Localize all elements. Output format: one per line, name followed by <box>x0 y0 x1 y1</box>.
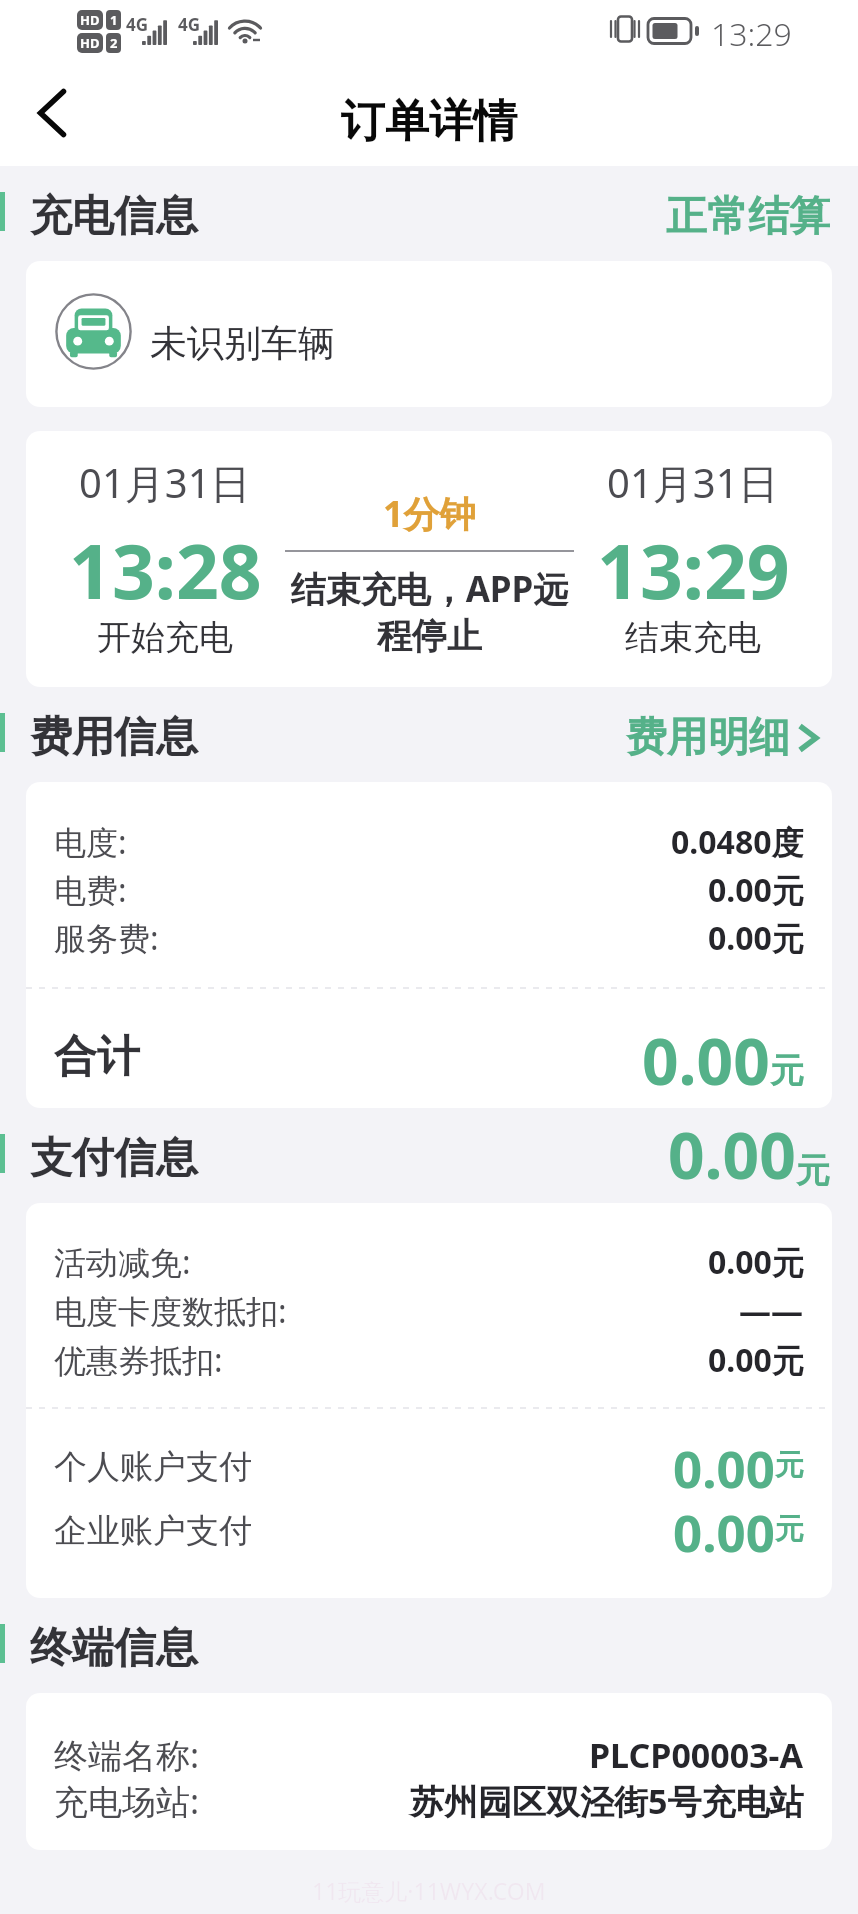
button[interactable]: 未识别车辆 <box>26 261 832 407</box>
staticText: 费用明细 <box>626 712 790 764</box>
staticText: 1 <box>110 11 118 29</box>
staticText: 2 <box>110 34 118 52</box>
staticText: 终端信息 <box>30 1622 198 1675</box>
staticText: 0.00元 <box>708 868 804 912</box>
staticText: 电费: <box>54 868 127 912</box>
staticText: 0.00 <box>668 1111 796 1198</box>
staticText: 元 <box>796 1149 830 1192</box>
staticText: HD <box>80 34 100 52</box>
staticText: 4G <box>178 13 201 36</box>
staticText: 正常结算 <box>666 191 830 243</box>
staticText: 元 <box>775 1511 804 1548</box>
staticText: —— <box>739 1289 804 1333</box>
staticText: 苏州园区双泾街5号充电站 <box>410 1778 804 1824</box>
staticText: 充电场站: <box>54 1778 200 1824</box>
staticText: 11玩意儿·11WYX.COM <box>312 1875 546 1906</box>
staticText: 结束充电，APP远程停止 <box>285 565 574 659</box>
staticText: 活动减免: <box>54 1240 191 1284</box>
staticText: 01月31日 <box>79 455 251 510</box>
staticText: HD <box>80 11 100 29</box>
staticText: 费用信息 <box>30 711 198 764</box>
button[interactable]: Back <box>0 66 100 166</box>
staticText: 合计 <box>54 1030 140 1084</box>
staticText: 4G <box>126 13 149 36</box>
staticText: 终端名称: <box>54 1732 200 1778</box>
staticText: 0.0480度 <box>671 820 804 864</box>
staticText: 0.00元 <box>708 1240 804 1284</box>
staticText: 结束充电 <box>625 616 761 659</box>
staticText: 元 <box>775 1447 804 1484</box>
button[interactable]: 费用明细 <box>626 704 830 772</box>
staticText: 优惠券抵扣: <box>54 1338 223 1382</box>
staticText: 订单详情 <box>341 94 517 149</box>
staticText: 0.00元 <box>708 916 804 960</box>
staticText: 开始充电 <box>97 616 233 659</box>
staticText: 0.00 <box>673 1433 775 1489</box>
staticText: 0.00 <box>642 1017 770 1097</box>
staticText: 充电信息 <box>30 190 198 243</box>
staticText: 0.00 <box>673 1497 775 1553</box>
staticText: 企业账户支付 <box>54 1510 252 1552</box>
staticText: 0.00元 <box>708 1338 804 1382</box>
staticText: 1分钟 <box>383 489 476 538</box>
staticText: 13:28 <box>69 519 262 621</box>
staticText: 13:29 <box>711 12 792 56</box>
staticText: 支付信息 <box>30 1132 198 1185</box>
staticText: 13:29 <box>597 519 790 621</box>
staticText: 01月31日 <box>607 455 779 510</box>
staticText: 未识别车辆 <box>150 320 335 367</box>
staticText: 电度: <box>54 820 127 864</box>
staticText: 电度卡度数抵扣: <box>54 1289 287 1333</box>
staticText: 服务费: <box>54 916 159 960</box>
staticText: PLCP00003-A <box>589 1732 804 1778</box>
staticText: 个人账户支付 <box>54 1446 252 1488</box>
staticText: 元 <box>770 1049 804 1092</box>
